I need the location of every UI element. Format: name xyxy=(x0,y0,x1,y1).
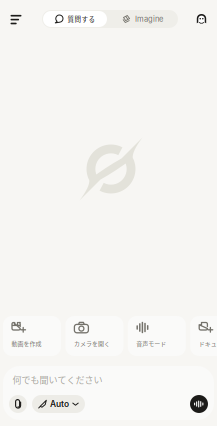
staticText: 何でも聞いてください xyxy=(12,373,102,386)
button[interactable]: Imagine xyxy=(108,11,177,27)
button[interactable]: 動画を作成 xyxy=(3,316,61,356)
button[interactable]: Voice mode xyxy=(190,395,208,413)
staticText: 動画を作成 xyxy=(11,339,41,348)
button[interactable]: Incognito xyxy=(190,8,212,30)
staticText: Auto xyxy=(50,399,69,409)
button[interactable]: ドキュメント xyxy=(190,316,217,356)
button[interactable]: Menu xyxy=(4,8,27,30)
staticText: 質問する xyxy=(67,14,95,24)
button[interactable]: Attach xyxy=(9,395,27,413)
button[interactable]: 音声モード xyxy=(128,316,186,356)
staticText: Imagine xyxy=(135,14,163,24)
staticText: カメラを開く xyxy=(74,339,110,348)
button[interactable]: カメラを開く xyxy=(65,316,123,356)
staticText: 音声モード xyxy=(136,339,166,348)
button[interactable]: 質問する xyxy=(43,11,107,27)
staticText: ドキュメント xyxy=(199,339,217,348)
button[interactable]: Auto xyxy=(32,395,85,413)
